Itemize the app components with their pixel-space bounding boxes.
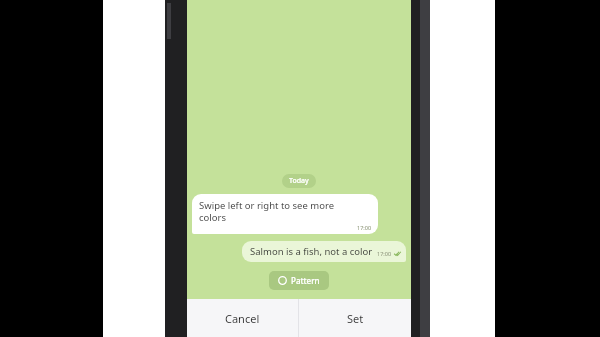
staticText: Pattern xyxy=(291,275,320,286)
staticText: Cancel xyxy=(225,311,260,326)
button[interactable]: Set xyxy=(299,299,411,337)
other: Pattern toggle xyxy=(278,276,287,285)
staticText: Set xyxy=(347,311,364,326)
staticText: Today xyxy=(289,176,309,186)
button[interactable]: Cancel xyxy=(187,299,298,337)
button[interactable]: Pattern toggle xyxy=(269,271,329,290)
button[interactable]: Salmon is a fish, not a color xyxy=(242,241,406,262)
staticText: 17:00 xyxy=(377,250,392,257)
button[interactable]: Swipe left or right to see more colors xyxy=(192,194,378,234)
staticText: 17:00 xyxy=(357,224,372,231)
staticText: Swipe left or right to see more colors xyxy=(199,199,335,224)
staticText: Salmon is a fish, not a color xyxy=(250,245,373,258)
